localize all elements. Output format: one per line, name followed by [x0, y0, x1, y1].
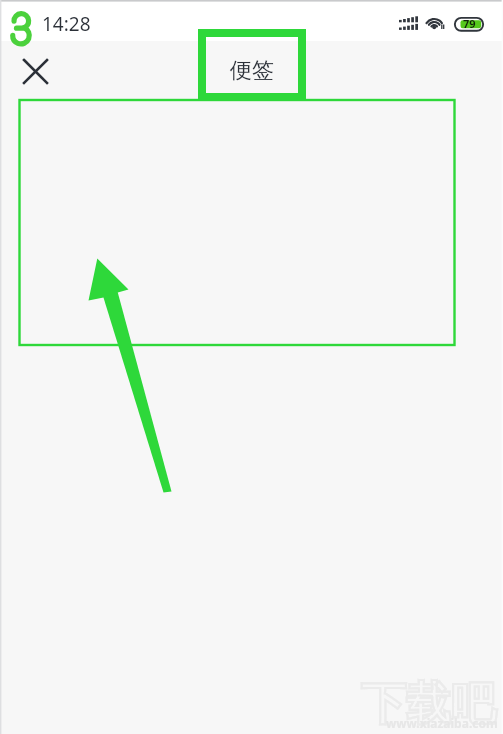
button[interactable]: 便签 — [202, 47, 302, 95]
other: Wi-Fi — [426, 15, 444, 29]
staticText: 下载吧 — [361, 676, 496, 733]
other: Mobile signal — [399, 14, 419, 28]
staticText: www.xiazaiba.com — [386, 715, 498, 731]
other: Step 3 — [0, 0, 503, 734]
button[interactable]: Close — [16, 52, 54, 90]
staticText: 14:28 — [42, 11, 91, 37]
button[interactable]: Note body — [0, 101, 503, 346]
other: Battery 79 percent — [454, 15, 484, 29]
staticText: 79 — [463, 16, 476, 30]
staticText: 便签 — [230, 57, 274, 85]
